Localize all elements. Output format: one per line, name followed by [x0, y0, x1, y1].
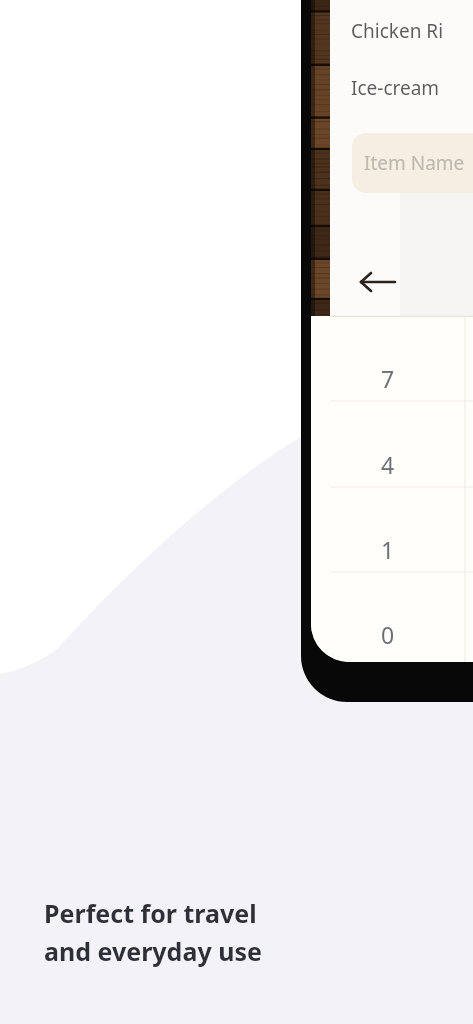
staticText: 4 [381, 449, 395, 480]
button[interactable]: 1 [347, 507, 429, 591]
staticText: Perfect for travel and everyday use [44, 896, 262, 968]
button[interactable]: 7 [347, 336, 429, 420]
button[interactable]: Ice-cream [351, 75, 473, 105]
button[interactable]: Item Name [352, 133, 473, 193]
staticText: Ice-cream [351, 75, 440, 101]
button[interactable]: 4 [347, 422, 429, 506]
staticText: Item Name [364, 150, 465, 176]
button[interactable]: Chicken Ri [351, 18, 473, 48]
staticText: Chicken Ri [351, 18, 444, 44]
staticText: 1 [381, 534, 395, 565]
button[interactable]: 0 [347, 592, 429, 676]
staticText: 0 [381, 619, 395, 650]
button[interactable]: Back [340, 252, 418, 314]
staticText: 7 [381, 363, 395, 394]
